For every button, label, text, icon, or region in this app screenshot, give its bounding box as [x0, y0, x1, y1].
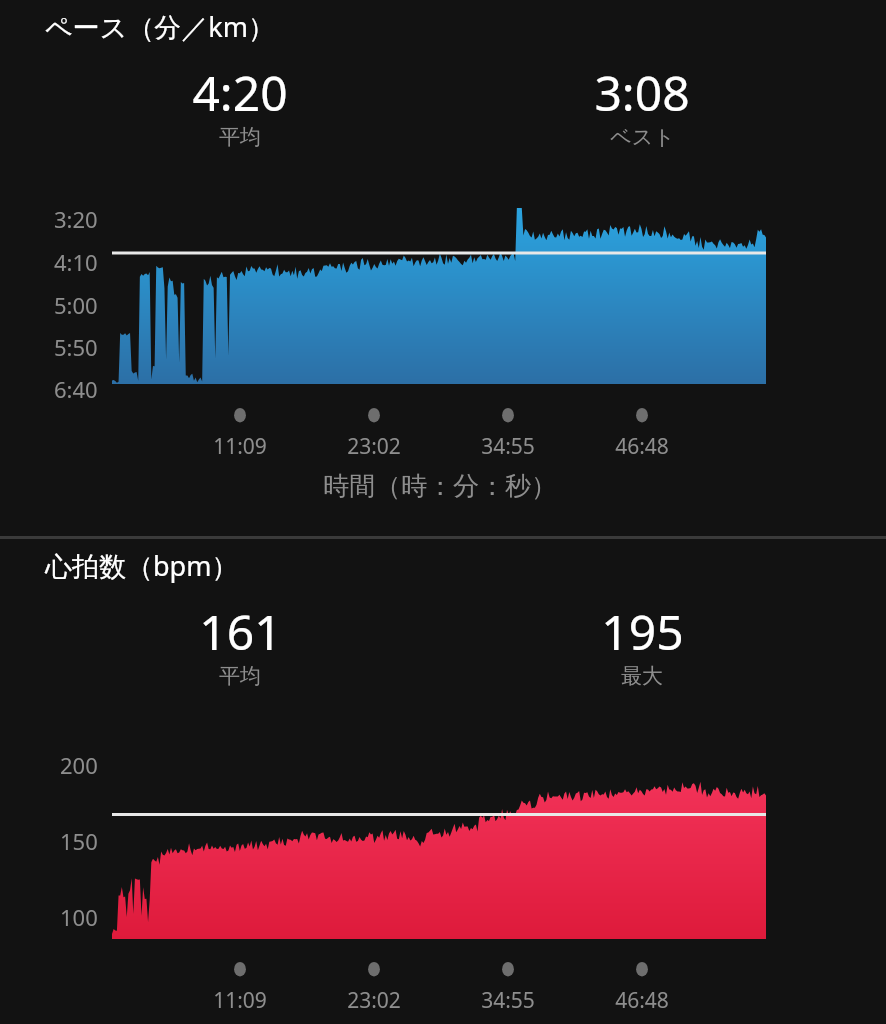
- staticText: 11:09: [213, 986, 267, 1015]
- staticText: 4:10: [54, 247, 98, 277]
- staticText: 100: [60, 902, 98, 932]
- button[interactable]: Heart rate chart: [0, 539, 886, 1024]
- button[interactable]: Pace chart: [0, 0, 886, 536]
- staticText: 3:08: [594, 60, 690, 125]
- staticText: 46:48: [615, 432, 669, 461]
- staticText: 23:02: [347, 986, 401, 1015]
- staticText: 195: [601, 599, 684, 664]
- staticText: 11:09: [213, 432, 267, 461]
- staticText: 平均: [219, 663, 261, 689]
- staticText: 心拍数（bpm）: [45, 547, 239, 584]
- staticText: 5:00: [54, 290, 98, 320]
- staticText: 23:02: [347, 432, 401, 461]
- staticText: 150: [60, 826, 98, 856]
- staticText: 200: [60, 750, 98, 780]
- staticText: 4:20: [192, 60, 288, 125]
- staticText: 161: [199, 599, 282, 664]
- staticText: 時間（時：分：秒）: [323, 470, 557, 503]
- staticText: ペース（分／km）: [45, 8, 275, 45]
- staticText: 平均: [219, 124, 261, 150]
- staticText: 3:20: [54, 204, 98, 234]
- staticText: 34:55: [481, 432, 535, 461]
- staticText: 5:50: [54, 332, 98, 362]
- staticText: 最大: [621, 663, 663, 689]
- staticText: ベスト: [610, 124, 675, 150]
- staticText: 34:55: [481, 986, 535, 1015]
- staticText: 6:40: [54, 374, 98, 404]
- staticText: 46:48: [615, 986, 669, 1015]
